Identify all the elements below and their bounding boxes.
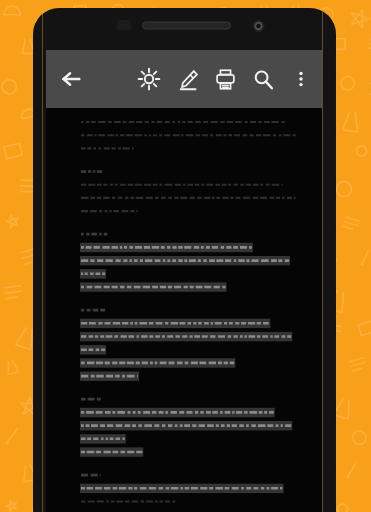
button[interactable]: Search — [244, 60, 282, 98]
button[interactable]: Back — [52, 60, 90, 98]
button[interactable]: More options — [282, 60, 320, 98]
button[interactable]: Brightness — [130, 60, 168, 98]
button[interactable]: Print — [206, 60, 244, 98]
button[interactable]: Highlight — [168, 60, 206, 98]
